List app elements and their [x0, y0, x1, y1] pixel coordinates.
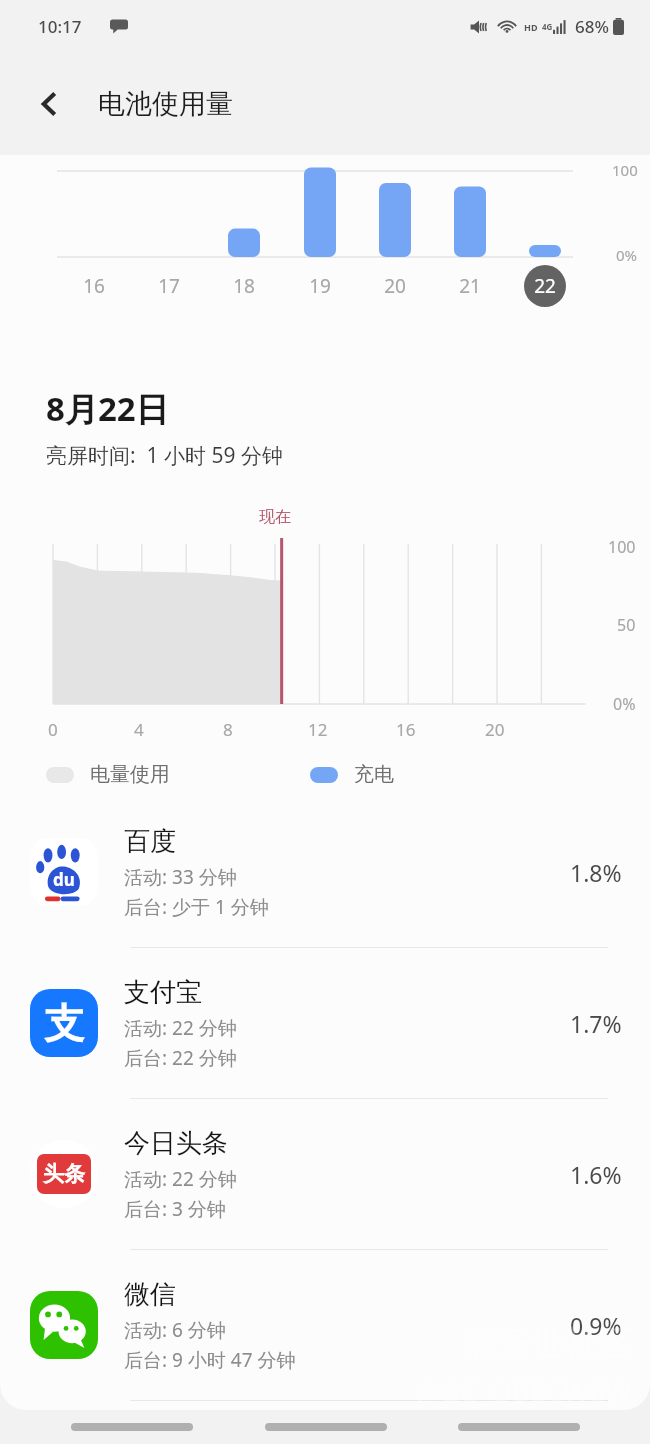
staticText: 68%	[575, 15, 609, 38]
staticText: 100	[608, 536, 636, 558]
staticText: 充电	[354, 762, 394, 787]
staticText: 活动: 33 分钟	[124, 864, 237, 890]
staticText: 100	[612, 160, 638, 180]
staticText: 活动: 22 分钟	[124, 1166, 237, 1192]
staticText: 0.9%	[570, 1310, 622, 1341]
staticText: 16	[396, 718, 416, 741]
button[interactable]: 头条	[0, 1099, 650, 1250]
staticText: 0%	[616, 245, 638, 265]
staticText: 16	[83, 273, 105, 299]
staticText: 微信	[124, 1278, 176, 1311]
staticText: 1.8%	[570, 857, 622, 888]
button[interactable]: Navigation	[263, 1416, 388, 1438]
button[interactable]: 18	[223, 265, 265, 307]
staticText: 4G	[542, 21, 553, 32]
staticText: 活动: 22 分钟	[124, 1015, 237, 1041]
staticText: 电池使用量	[98, 87, 233, 121]
staticText: 后台: 9 小时 47 分钟	[124, 1347, 296, 1373]
staticText: 20	[485, 718, 505, 741]
button[interactable]: 20	[374, 265, 416, 307]
staticText: 今日头条	[124, 1127, 228, 1160]
staticText: du	[53, 868, 75, 891]
staticText: 1.6%	[570, 1159, 622, 1190]
staticText: 后台: 少于 1 分钟	[124, 894, 269, 920]
button[interactable]: 17	[148, 265, 190, 307]
button[interactable]: 支	[0, 948, 650, 1099]
button[interactable]: Navigation	[456, 1416, 581, 1438]
staticText: 支付宝	[124, 976, 202, 1009]
staticText: 18	[233, 273, 255, 299]
staticText: 活动: 6 分钟	[124, 1317, 226, 1343]
staticText: 1.7%	[570, 1008, 622, 1039]
staticText: 亮屏时间: 1 小时 59 分钟	[46, 441, 283, 470]
staticText: 10:17	[38, 15, 82, 38]
staticText: 现在	[259, 507, 291, 527]
staticText: 22	[534, 273, 556, 299]
staticText: 盖乐世社区	[462, 1323, 632, 1366]
staticText: 后台: 3 分钟	[124, 1196, 226, 1222]
button[interactable]: Back	[22, 76, 78, 132]
staticText: 头条	[43, 1161, 85, 1187]
staticText: 50	[617, 614, 636, 636]
staticText: 0%	[613, 693, 636, 715]
staticText: 21	[459, 273, 481, 299]
staticText: 电量使用	[90, 762, 170, 787]
staticText: 8	[223, 718, 233, 741]
button[interactable]: du	[0, 797, 650, 948]
button[interactable]: 22	[524, 265, 566, 307]
staticText: 支	[44, 998, 84, 1048]
staticText: 17	[158, 273, 180, 299]
staticText: 20	[384, 273, 406, 299]
button[interactable]: Navigation	[69, 1416, 194, 1438]
button[interactable]: 16	[73, 265, 115, 307]
staticText: 百度	[124, 825, 176, 858]
staticText: 0	[48, 718, 58, 741]
staticText: 4	[134, 718, 144, 741]
staticText: 19	[309, 273, 331, 299]
staticText: HD	[524, 21, 538, 33]
button[interactable]: 19	[299, 265, 341, 307]
button[interactable]: 微信	[0, 1250, 650, 1401]
staticText: 12	[308, 718, 328, 741]
staticText: 8月22日	[46, 386, 169, 431]
button[interactable]: 21	[449, 265, 491, 307]
staticText: 后台: 22 分钟	[124, 1045, 237, 1071]
